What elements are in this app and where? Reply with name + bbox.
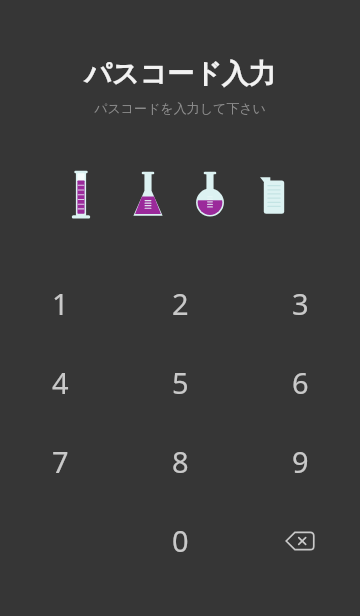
button[interactable]: 2 [120,264,240,343]
button[interactable]: 4 [0,343,120,422]
staticText: 4 [52,363,69,402]
button[interactable]: 8 [120,422,240,501]
staticText: パスコードを入力して下さい [0,100,360,116]
button[interactable]: 0 [120,501,240,580]
button[interactable]: 6 [240,343,360,422]
staticText: パスコード入力 [0,57,360,91]
button[interactable]: Delete [240,501,360,580]
button[interactable]: 7 [0,422,120,501]
staticText: 6 [292,363,309,402]
staticText: 7 [52,442,69,481]
staticText: 5 [172,363,189,402]
staticText: 2 [172,284,189,323]
button[interactable]: 3 [240,264,360,343]
staticText: 8 [172,442,189,481]
staticText: 9 [292,442,309,481]
button[interactable]: 1 [0,264,120,343]
staticText: 0 [172,521,189,560]
button[interactable]: 9 [240,422,360,501]
button[interactable]: 5 [120,343,240,422]
staticText: 3 [292,284,309,323]
staticText: 1 [52,284,69,323]
